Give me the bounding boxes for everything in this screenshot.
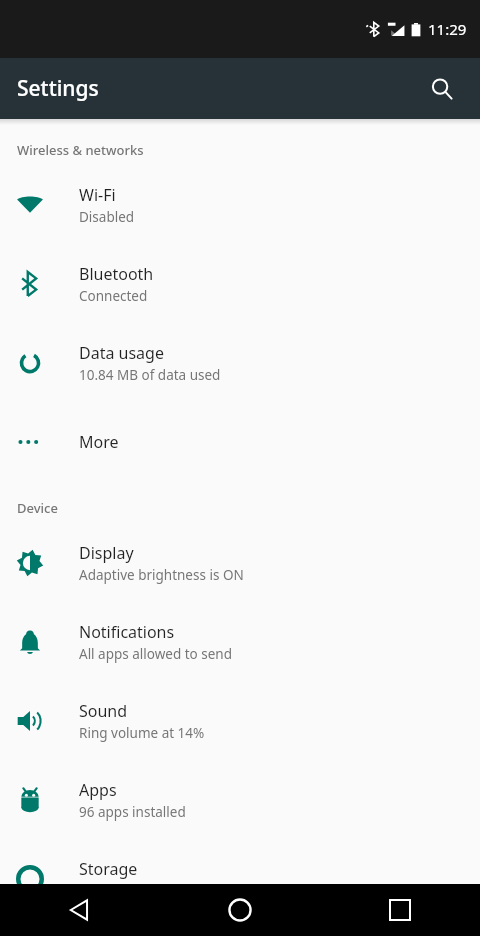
button[interactable]: Display [0, 523, 480, 602]
staticText: 11:29 [428, 19, 467, 39]
staticText: 96 apps installed [79, 803, 186, 821]
button[interactable]: Home [160, 884, 320, 936]
button[interactable]: Apps [0, 760, 480, 839]
staticText: Wi-Fi [79, 184, 116, 206]
staticText: Notifications [79, 621, 175, 643]
button[interactable]: Data usage [0, 323, 480, 402]
staticText: More [79, 431, 119, 453]
staticText: Settings [17, 74, 99, 103]
staticText: Display [79, 542, 134, 564]
staticText: All apps allowed to send [79, 645, 233, 663]
staticText: Disabled [79, 208, 135, 226]
button[interactable]: Notifications [0, 602, 480, 681]
button[interactable]: Recent apps [320, 884, 480, 936]
staticText: Ring volume at 14% [79, 724, 205, 742]
button[interactable]: More [0, 402, 480, 481]
staticText: Adaptive brightness is ON [79, 566, 244, 584]
staticText: Apps [79, 779, 117, 801]
staticText: Sound [79, 700, 128, 722]
staticText: Storage [79, 858, 138, 880]
button[interactable]: Sound [0, 681, 480, 760]
staticText: Device [17, 499, 58, 517]
staticText: Connected [79, 287, 148, 305]
staticText: Bluetooth [79, 263, 154, 285]
button[interactable]: Search [420, 67, 464, 111]
staticText: Wireless & networks [17, 141, 144, 159]
button[interactable]: Wi-Fi [0, 165, 480, 244]
button[interactable]: Bluetooth [0, 244, 480, 323]
button[interactable]: Back [0, 884, 160, 936]
button[interactable]: Storage [0, 839, 480, 918]
staticText: 10.84 MB of data used [79, 366, 221, 384]
staticText: Data usage [79, 342, 164, 364]
staticText: Internal storage [79, 882, 182, 900]
